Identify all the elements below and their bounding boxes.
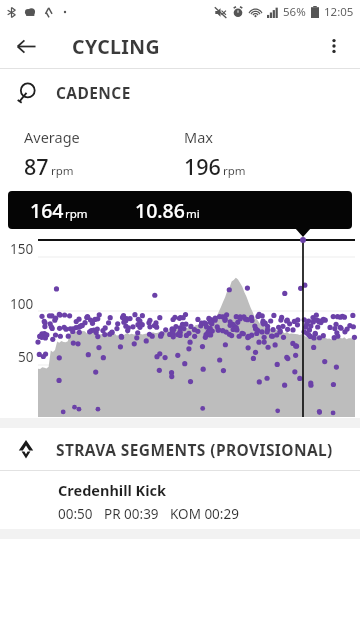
staticText: 50 — [18, 348, 34, 366]
staticText: 100 — [10, 295, 34, 313]
staticText: rpm — [51, 163, 74, 179]
staticText: Max — [184, 127, 213, 147]
staticText: KOM 00:29 — [170, 505, 239, 523]
staticText: Average — [24, 127, 80, 147]
staticText: 150 — [10, 240, 34, 258]
staticText: 87 — [24, 152, 49, 181]
button[interactable]: CADENCE — [0, 69, 360, 115]
button[interactable]: More options — [314, 26, 354, 66]
staticText: 00:50 — [58, 505, 93, 523]
staticText: 12:05 — [324, 4, 354, 20]
staticText: 164 — [30, 197, 64, 224]
staticText: STRAVA SEGMENTS (PROVISIONAL) — [56, 439, 333, 460]
button[interactable]: Back — [6, 26, 46, 66]
staticText: 56% — [283, 4, 306, 20]
button[interactable]: 164 — [8, 191, 352, 229]
staticText: Credenhill Kick — [58, 480, 167, 500]
button[interactable]: 150 — [0, 237, 360, 418]
staticText: CADENCE — [56, 82, 131, 103]
staticText: rpm — [65, 206, 88, 222]
staticText: 196 — [184, 152, 221, 181]
staticText: PR 00:39 — [104, 505, 159, 523]
staticText: rpm — [223, 163, 246, 179]
staticText: 10.86 — [135, 197, 185, 224]
button[interactable]: Credenhill Kick — [0, 471, 360, 529]
button[interactable]: STRAVA SEGMENTS (PROVISIONAL) — [0, 428, 360, 470]
staticText: CYCLING — [72, 33, 161, 60]
staticText: mi — [186, 206, 200, 222]
